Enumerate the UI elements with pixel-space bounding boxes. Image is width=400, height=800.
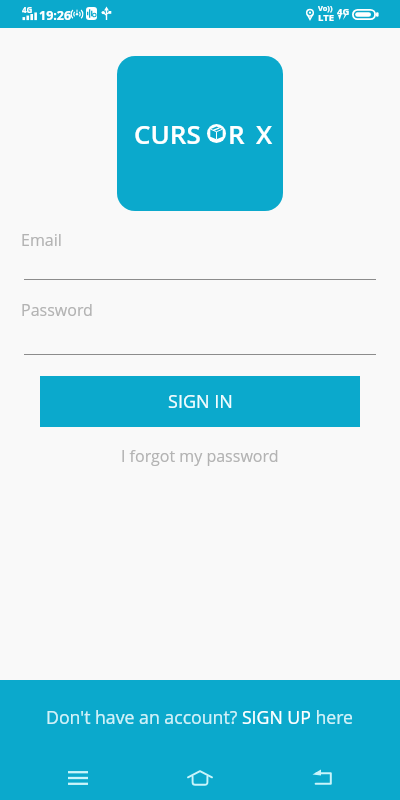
staticText: Password (21, 299, 93, 321)
staticText: R (228, 116, 245, 151)
staticText: Don't have an account? SIGN UP here (46, 705, 354, 729)
staticText: X (256, 116, 273, 151)
staticText: 4G (337, 5, 350, 18)
staticText: SIGN IN (168, 389, 233, 414)
staticText: LTE (318, 11, 334, 24)
button[interactable]: Back (299, 755, 345, 800)
button[interactable]: Recent apps (55, 755, 101, 800)
staticText: 4G (22, 4, 33, 15)
staticText: Email (21, 229, 62, 251)
staticText: 19:26 (39, 7, 72, 24)
button[interactable]: SIGN IN (40, 376, 360, 427)
staticText: I forgot my password (121, 445, 279, 467)
staticText: Vo)) (318, 3, 333, 13)
button[interactable]: Home (177, 755, 223, 800)
button[interactable]: Don't have an account? SIGN UP here (0, 680, 400, 753)
button[interactable]: I forgot my password (111, 440, 289, 472)
staticText: CURS (134, 116, 201, 151)
